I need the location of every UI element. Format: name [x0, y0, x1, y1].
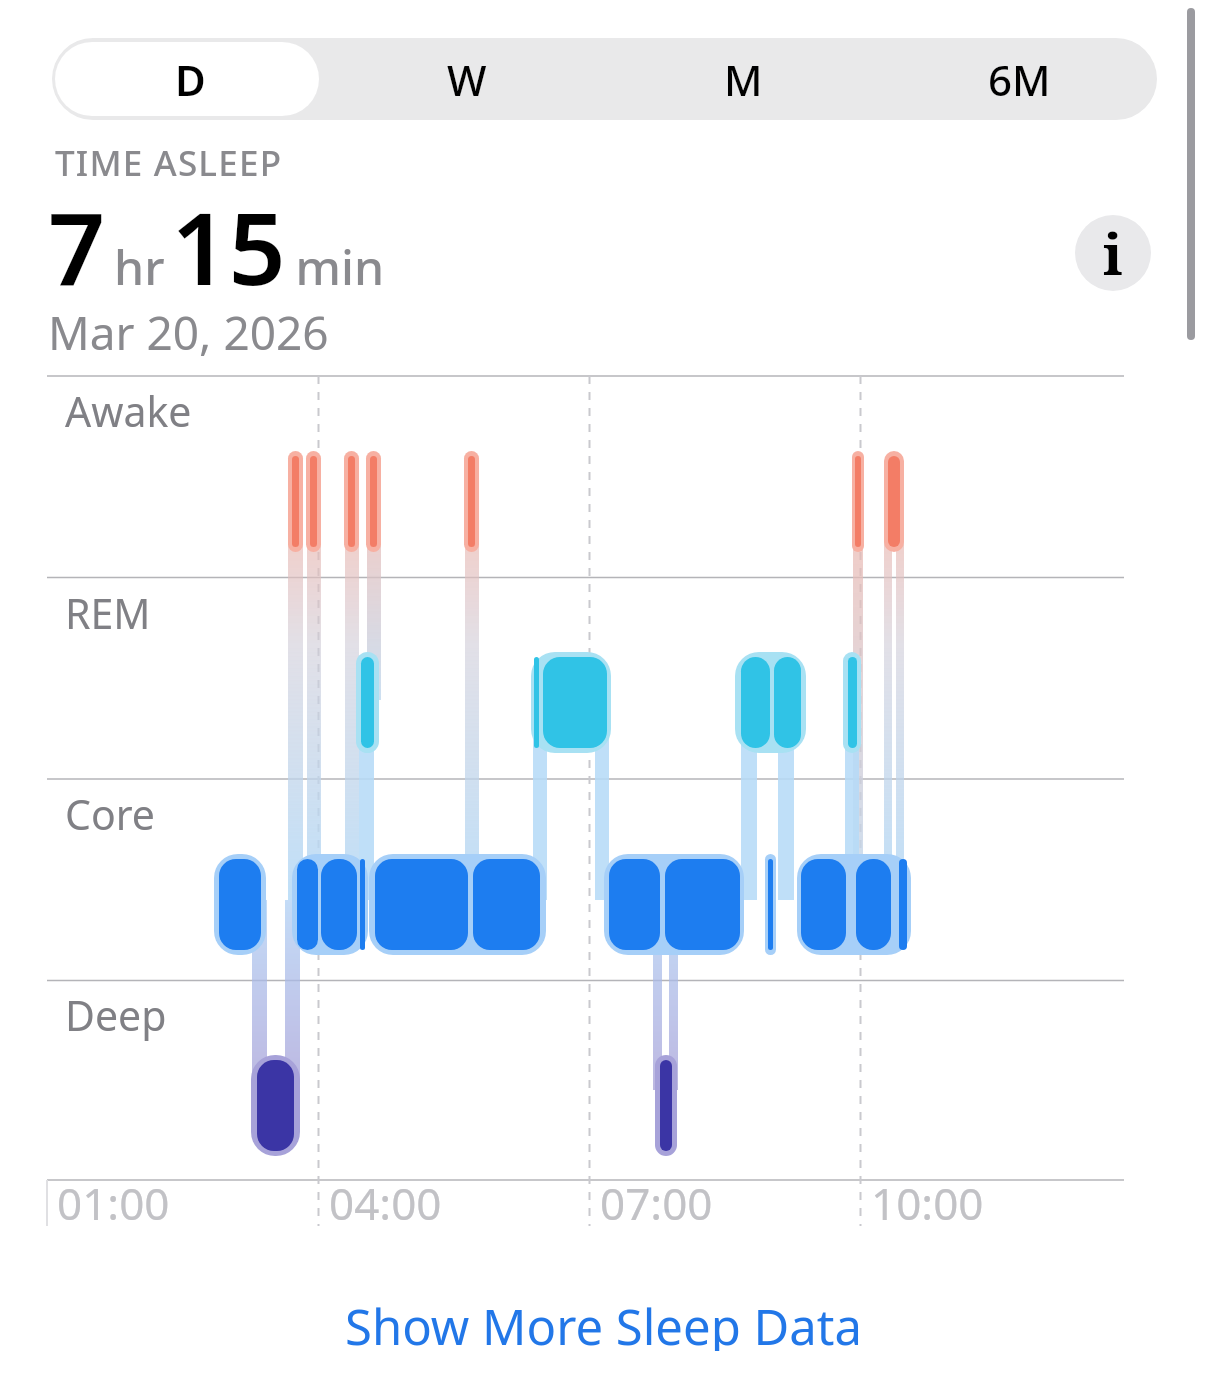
staticText: Deep	[65, 987, 167, 1043]
staticText: 01:00	[57, 1173, 170, 1233]
staticText: W	[447, 51, 487, 108]
staticText: Core	[65, 786, 155, 842]
button[interactable]: 6M	[881, 38, 1157, 120]
button[interactable]: Show More Sleep Data	[335, 1289, 872, 1355]
staticText: Show More Sleep Data	[345, 1293, 862, 1351]
staticText: M	[724, 51, 763, 108]
staticText: TIME ASLEEP	[55, 139, 283, 187]
staticText: 7 hr 15 min	[48, 178, 384, 314]
staticText: Awake	[65, 383, 192, 439]
button[interactable]: M	[605, 38, 881, 120]
staticText: 6M	[988, 51, 1051, 108]
staticText: Mar 20, 2026	[48, 301, 329, 364]
staticText: i	[1103, 215, 1123, 291]
staticText: D	[175, 51, 206, 108]
staticText: REM	[65, 585, 151, 641]
staticText: 04:00	[329, 1173, 442, 1233]
button[interactable]: i	[1075, 215, 1151, 291]
staticText: 10:00	[871, 1173, 984, 1233]
button[interactable]: W	[329, 38, 605, 120]
staticText: 07:00	[600, 1173, 713, 1233]
button[interactable]: D	[52, 38, 329, 120]
